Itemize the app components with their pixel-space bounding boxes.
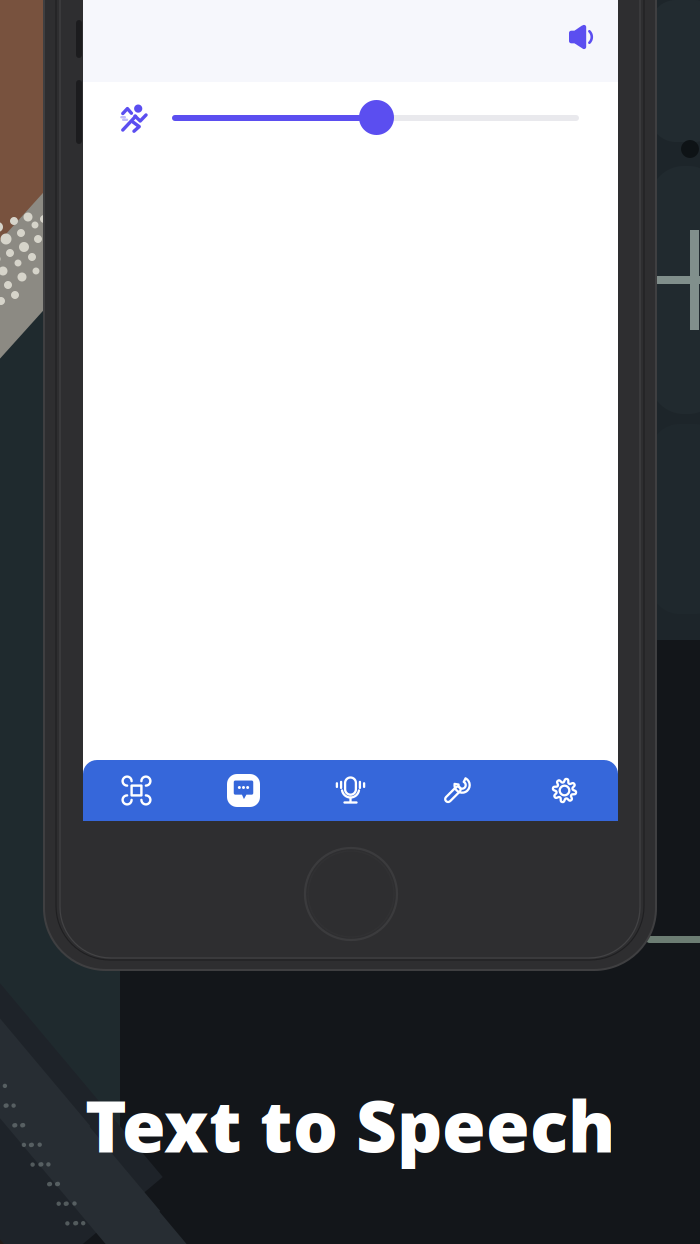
button[interactable]: Settings bbox=[511, 760, 618, 821]
button[interactable]: Messages bbox=[190, 760, 297, 821]
button[interactable]: Record bbox=[297, 760, 404, 821]
button[interactable]: Tools bbox=[404, 760, 511, 821]
button[interactable]: Shortcuts bbox=[83, 760, 190, 821]
staticText: Text to Speech bbox=[85, 1078, 615, 1172]
button[interactable]: Speaker bbox=[560, 16, 602, 58]
